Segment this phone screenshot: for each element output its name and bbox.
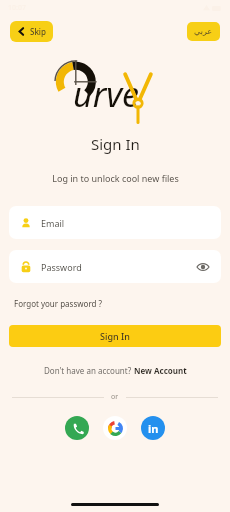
staticText: Email <box>41 217 65 229</box>
button[interactable]: Sign in with Google <box>103 416 127 440</box>
staticText: Password <box>41 261 82 273</box>
button[interactable]: Sign in with phone <box>65 416 89 440</box>
staticText: New Account <box>134 365 187 376</box>
button[interactable]: Don't have an account? <box>0 365 230 376</box>
staticText: عربي <box>194 27 213 36</box>
button[interactable]: عربي <box>187 22 220 41</box>
staticText: Sign In <box>91 134 140 154</box>
staticText: Forgot your password ? <box>14 298 103 309</box>
staticText: Skip <box>30 26 46 37</box>
button[interactable]: Skip <box>10 21 53 42</box>
staticText: in <box>148 421 159 436</box>
staticText: Don't have an account? <box>44 365 134 376</box>
button[interactable]: Show password <box>196 260 210 274</box>
button[interactable]: Password <box>9 250 221 283</box>
button[interactable]: Forgot your password ? <box>14 296 103 311</box>
button[interactable]: Sign In <box>9 325 221 347</box>
staticText: or <box>111 392 119 402</box>
staticText: Sign In <box>100 330 130 342</box>
button[interactable]: Email <box>9 206 221 239</box>
staticText: urve <box>73 71 140 117</box>
button[interactable]: Sign in with LinkedIn <box>141 416 165 440</box>
staticText: Log in to unlock cool new files <box>52 172 179 184</box>
